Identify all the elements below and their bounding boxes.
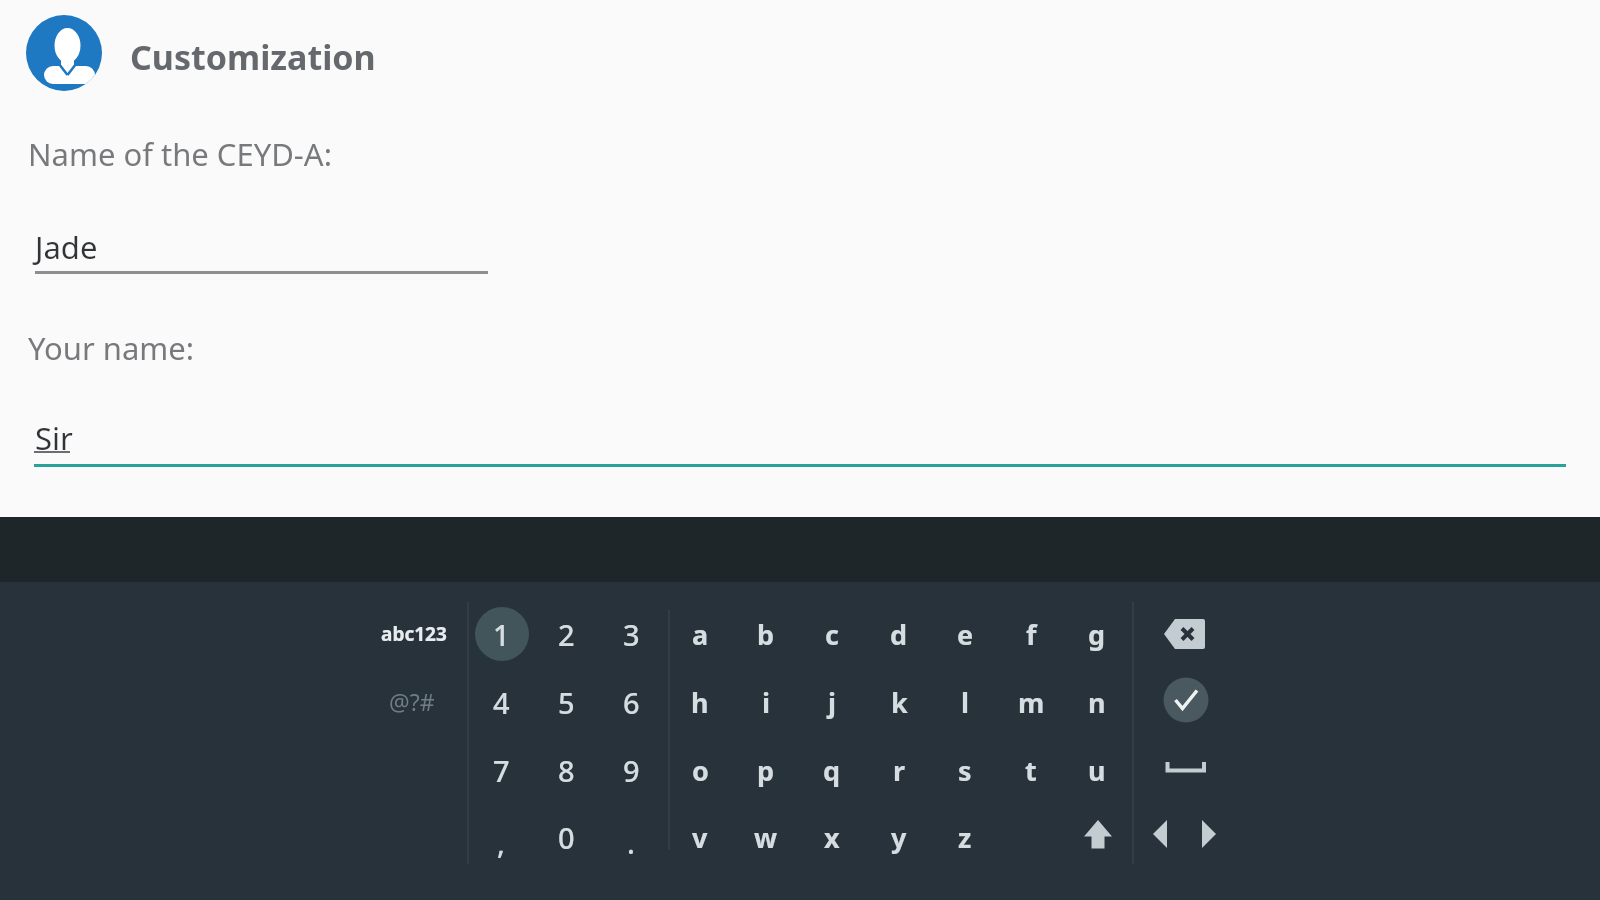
staticText: r — [893, 752, 906, 789]
staticText: l — [961, 684, 970, 721]
button[interactable]: j — [801, 671, 863, 733]
button[interactable]: s — [934, 739, 996, 801]
staticText: j — [828, 684, 837, 721]
staticText: 3 — [623, 615, 640, 654]
staticText: Customization — [130, 34, 376, 80]
button[interactable]: . — [601, 811, 661, 873]
staticText: . — [627, 823, 635, 862]
staticText: Jade — [35, 226, 98, 268]
button[interactable]: o — [669, 739, 731, 801]
staticText: , — [497, 823, 505, 862]
staticText: h — [691, 684, 709, 721]
staticText: f — [1026, 616, 1037, 653]
button[interactable]: v — [669, 806, 731, 868]
button[interactable]: @?# — [357, 671, 467, 731]
button[interactable]: g — [1066, 603, 1128, 665]
button[interactable]: 6 — [601, 671, 661, 733]
staticText: Sir — [35, 417, 73, 459]
button[interactable]: h — [669, 671, 731, 733]
staticText: 2 — [558, 615, 575, 654]
button[interactable]: k — [868, 671, 930, 733]
button[interactable]: , — [471, 811, 531, 873]
button[interactable]: 7 — [471, 739, 531, 801]
button[interactable]: d — [868, 603, 930, 665]
button[interactable] — [1067, 805, 1129, 867]
staticText: 9 — [623, 751, 640, 790]
staticText: y — [891, 819, 907, 856]
staticText: i — [762, 684, 771, 721]
staticText: Your name: — [28, 327, 195, 369]
button[interactable]: e — [934, 603, 996, 665]
button[interactable]: 1 — [471, 603, 531, 665]
button[interactable]: 9 — [601, 739, 661, 801]
button[interactable]: n — [1066, 671, 1128, 733]
staticText: abc123 — [381, 621, 447, 647]
button[interactable]: b — [735, 603, 797, 665]
staticText: c — [825, 616, 839, 653]
staticText: s — [958, 752, 972, 789]
button[interactable]: 2 — [536, 603, 596, 665]
staticText: p — [757, 752, 775, 789]
button[interactable]: p — [735, 739, 797, 801]
staticText: q — [823, 752, 841, 789]
staticText: 0 — [558, 818, 575, 857]
button[interactable] — [1153, 667, 1219, 733]
staticText: d — [890, 616, 908, 653]
staticText: 5 — [558, 683, 575, 722]
button[interactable]: 4 — [471, 671, 531, 733]
staticText: w — [754, 819, 778, 856]
staticText: e — [957, 616, 974, 653]
button[interactable]: f — [1000, 603, 1062, 665]
button[interactable]: 0 — [536, 806, 596, 868]
staticText: 8 — [558, 751, 575, 790]
button[interactable]: abc123 — [359, 604, 469, 664]
staticText: n — [1088, 684, 1106, 721]
staticText: m — [1018, 684, 1045, 721]
button[interactable]: l — [934, 671, 996, 733]
button[interactable]: 5 — [536, 671, 596, 733]
staticText: g — [1088, 616, 1106, 653]
staticText: 7 — [493, 751, 510, 790]
button[interactable] — [1135, 803, 1185, 865]
staticText: k — [891, 684, 908, 721]
button[interactable]: m — [1000, 671, 1062, 733]
staticText: x — [824, 819, 840, 856]
button[interactable] — [1184, 803, 1234, 865]
button[interactable]: t — [1000, 739, 1062, 801]
staticText: u — [1088, 752, 1106, 789]
staticText: v — [692, 819, 708, 856]
button[interactable]: 3 — [601, 603, 661, 665]
button[interactable]: 8 — [536, 739, 596, 801]
staticText: a — [692, 616, 709, 653]
button[interactable]: x — [801, 806, 863, 868]
staticText: Name of the CEYD-A: — [28, 133, 332, 175]
button[interactable]: r — [868, 739, 930, 801]
button[interactable] — [1152, 601, 1218, 667]
button[interactable] — [1152, 734, 1218, 800]
button[interactable]: a — [669, 603, 731, 665]
button[interactable]: u — [1066, 739, 1128, 801]
staticText: @?# — [389, 686, 435, 717]
button[interactable]: i — [735, 671, 797, 733]
button[interactable] — [26, 15, 102, 91]
button[interactable]: q — [801, 739, 863, 801]
button[interactable]: y — [868, 806, 930, 868]
button[interactable]: z — [934, 806, 996, 868]
staticText: 6 — [623, 683, 640, 722]
button[interactable]: c — [801, 603, 863, 665]
button[interactable]: w — [735, 806, 797, 868]
staticText: o — [692, 752, 709, 789]
staticText: 1 — [493, 615, 510, 654]
staticText: b — [757, 616, 775, 653]
staticText: 4 — [493, 683, 510, 722]
staticText: t — [1025, 752, 1037, 789]
staticText: z — [958, 819, 972, 856]
